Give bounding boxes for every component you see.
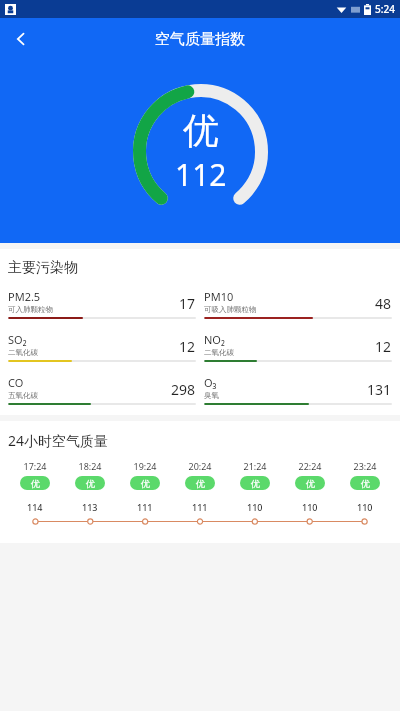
staticText: 二氧化碳 — [8, 348, 38, 357]
staticText: 23:24 — [353, 460, 377, 472]
staticText: 114 — [27, 501, 43, 513]
staticText: 12 — [179, 337, 196, 356]
staticText: 110 — [247, 501, 263, 513]
staticText: 48 — [375, 294, 392, 313]
staticText: 111 — [192, 501, 208, 513]
staticText: 优 — [31, 478, 40, 489]
staticText: 110 — [357, 501, 373, 513]
button[interactable]: 22:24 — [282, 460, 337, 513]
button[interactable]: 20:24 — [172, 460, 227, 513]
button[interactable]: NO₂ — [204, 332, 392, 362]
staticText: 19:24 — [133, 460, 157, 472]
button[interactable]: 23:24 — [337, 460, 392, 513]
staticText: 24小时空气质量 — [8, 431, 109, 450]
staticText: 可吸入肺颗粒物 — [204, 305, 257, 314]
staticText: 优 — [251, 478, 260, 489]
staticText: 113 — [82, 501, 98, 513]
staticText: 20:24 — [188, 460, 212, 472]
staticText: 5:24 — [375, 2, 395, 16]
staticText: 优 — [86, 478, 95, 489]
staticText: O₃ — [204, 375, 217, 390]
staticText: 主要污染物 — [8, 259, 78, 277]
button[interactable]: 17:24 — [8, 460, 62, 513]
staticText: 298 — [171, 380, 196, 399]
staticText: 优 — [183, 108, 219, 153]
button[interactable]: SO₂ — [8, 332, 196, 362]
staticText: 12 — [375, 337, 392, 356]
button[interactable]: PM2.5 — [8, 289, 196, 319]
staticText: 优 — [196, 478, 205, 489]
staticText: 22:24 — [298, 460, 322, 472]
staticText: NO₂ — [204, 332, 225, 347]
staticText: 优 — [361, 478, 370, 489]
staticText: 空气质量指数 — [155, 30, 245, 49]
staticText: 可入肺颗粒物 — [8, 305, 53, 314]
button[interactable]: CO — [8, 375, 196, 405]
button[interactable]: 19:24 — [117, 460, 172, 513]
staticText: 优 — [141, 478, 150, 489]
staticText: 112 — [175, 154, 227, 195]
button[interactable]: Back — [4, 22, 38, 56]
staticText: 优 — [306, 478, 315, 489]
button[interactable]: PM10 — [204, 289, 392, 319]
staticText: 臭氧 — [204, 391, 219, 400]
staticText: PM2.5 — [8, 289, 41, 304]
staticText: 110 — [302, 501, 318, 513]
staticText: 17:24 — [23, 460, 47, 472]
staticText: SO₂ — [8, 332, 27, 347]
button[interactable]: 21:24 — [227, 460, 282, 513]
staticText: 18:24 — [78, 460, 102, 472]
staticText: 21:24 — [243, 460, 267, 472]
staticText: CO — [8, 375, 24, 390]
staticText: 111 — [137, 501, 153, 513]
button[interactable]: O₃ — [204, 375, 392, 405]
staticText: 二氧化碳 — [204, 348, 234, 357]
staticText: 17 — [179, 294, 196, 313]
button[interactable]: 18:24 — [62, 460, 117, 513]
staticText: 五氧化碳 — [8, 391, 38, 400]
staticText: PM10 — [204, 289, 234, 304]
staticText: 131 — [367, 380, 392, 399]
